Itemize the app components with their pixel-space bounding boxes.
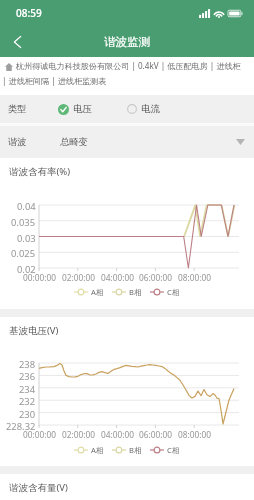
- button[interactable]: 类型: [0, 95, 254, 123]
- button[interactable]: B相: [112, 287, 142, 297]
- staticText: 谐波含有量(V): [9, 481, 68, 494]
- staticText: 06:00:00: [139, 272, 172, 283]
- staticText: 0.04: [17, 200, 36, 213]
- button[interactable]: C相: [150, 287, 180, 297]
- staticText: 电压: [73, 103, 92, 115]
- staticText: 06:00:00: [139, 429, 172, 440]
- staticText: 谐波含有率(%): [9, 165, 71, 178]
- staticText: 04:00:00: [101, 429, 134, 440]
- staticText: B相: [129, 287, 142, 297]
- staticText: 0.025: [11, 247, 36, 260]
- staticText: 00:00:00: [23, 429, 56, 440]
- staticText: 总畸变: [60, 136, 88, 148]
- staticText: 08:00:00: [178, 429, 211, 440]
- staticText: A相: [91, 445, 104, 455]
- staticText: | 进线柜间隔 | 进线柜监测表: [2, 75, 107, 86]
- staticText: 0.02: [17, 263, 36, 276]
- button[interactable]: 杭州得诚电力科技股份有限公司 | 0.4kV | 低压配电房 | 进线柜: [0, 57, 254, 95]
- staticText: 杭州得诚电力科技股份有限公司 | 0.4kV | 低压配电房 | 进线柜: [16, 60, 241, 71]
- button[interactable]: B相: [112, 445, 142, 455]
- staticText: 0.03: [17, 232, 36, 245]
- staticText: 类型: [8, 103, 27, 115]
- staticText: 238: [19, 358, 36, 371]
- staticText: C相: [167, 287, 180, 297]
- staticText: 02:00:00: [62, 429, 95, 440]
- staticText: 228.32: [6, 420, 36, 433]
- button[interactable]: A相: [74, 445, 104, 455]
- staticText: A相: [91, 287, 104, 297]
- staticText: 08:59: [16, 6, 42, 20]
- staticText: 谐波监测: [104, 35, 151, 50]
- button[interactable]: 电压: [58, 103, 92, 115]
- staticText: 电流: [141, 103, 160, 115]
- staticText: 基波电压(V): [9, 324, 59, 337]
- staticText: 00:00:00: [23, 272, 56, 283]
- button[interactable]: 电流: [127, 103, 160, 115]
- staticText: 230: [19, 408, 36, 421]
- staticText: 02:00:00: [62, 272, 95, 283]
- staticText: 232: [19, 395, 36, 408]
- staticText: 04:00:00: [101, 272, 134, 283]
- staticText: 234: [19, 383, 36, 396]
- button[interactable]: A相: [74, 287, 104, 297]
- staticText: 08:00:00: [178, 272, 211, 283]
- staticText: C相: [167, 445, 180, 455]
- staticText: 0.035: [11, 216, 36, 229]
- staticText: 谐波: [8, 136, 27, 148]
- button[interactable]: 谐波: [0, 126, 254, 157]
- button[interactable]: C相: [150, 445, 180, 455]
- staticText: 236: [19, 370, 36, 383]
- button[interactable]: Back: [0, 27, 34, 57]
- staticText: B相: [129, 445, 142, 455]
